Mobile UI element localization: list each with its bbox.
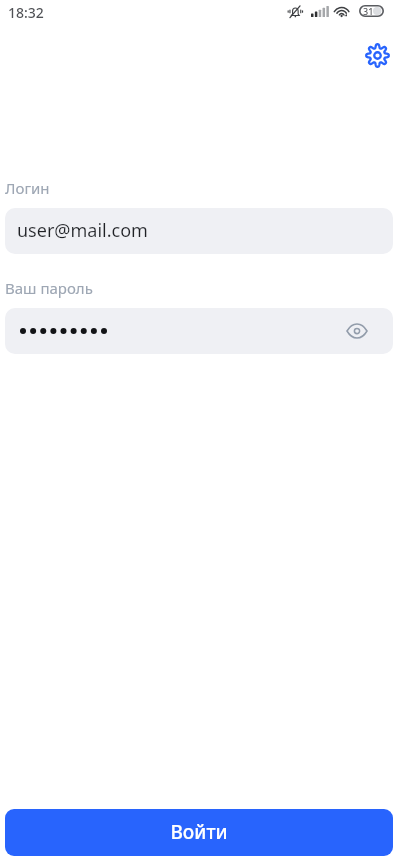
button[interactable]: Войти [5,809,393,856]
staticText: Логин [5,178,50,198]
button[interactable]: Settings [363,41,391,69]
button[interactable]: Show password [344,318,370,344]
staticText: Ваш пароль [5,278,93,298]
staticText: Войти [170,819,228,845]
staticText: user@mail.com [17,218,148,243]
staticText: 18:32 [8,3,44,22]
staticText: 31 [363,5,374,17]
button[interactable]: Show password [5,308,393,354]
button[interactable]: user@mail.com [5,208,393,254]
